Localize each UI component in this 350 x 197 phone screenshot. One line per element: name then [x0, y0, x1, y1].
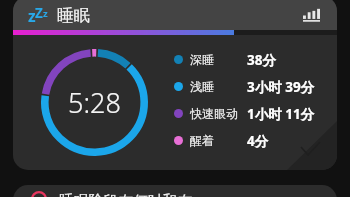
staticText: 醒着 — [190, 133, 214, 148]
staticText: 4分 — [247, 132, 269, 150]
staticText: 38分 — [247, 51, 276, 69]
staticText: 睡眠 — [57, 5, 90, 26]
staticText: z — [43, 7, 48, 20]
staticText: z — [28, 5, 36, 26]
button[interactable]: 快速眼动 — [174, 100, 337, 127]
staticText: Z — [35, 4, 43, 22]
button[interactable]: z — [13, 0, 337, 170]
staticText: 3小时 39分 — [247, 78, 315, 96]
button[interactable]: 浅睡 — [174, 73, 337, 100]
button[interactable]: 深睡 — [174, 46, 337, 73]
staticText: 浅睡 — [190, 79, 214, 94]
staticText: 1小时 11分 — [247, 105, 315, 123]
button[interactable]: 睡眠阶段在何时和在 — [13, 185, 337, 197]
staticText: 深睡 — [190, 52, 214, 67]
button[interactable]: 醒着 — [174, 127, 337, 154]
staticText: 快速眼动 — [190, 106, 238, 121]
button[interactable]: Statistics — [296, 0, 326, 30]
staticText: 5:28 — [68, 84, 121, 121]
staticText: 睡眠阶段在何时和在 — [59, 192, 193, 197]
